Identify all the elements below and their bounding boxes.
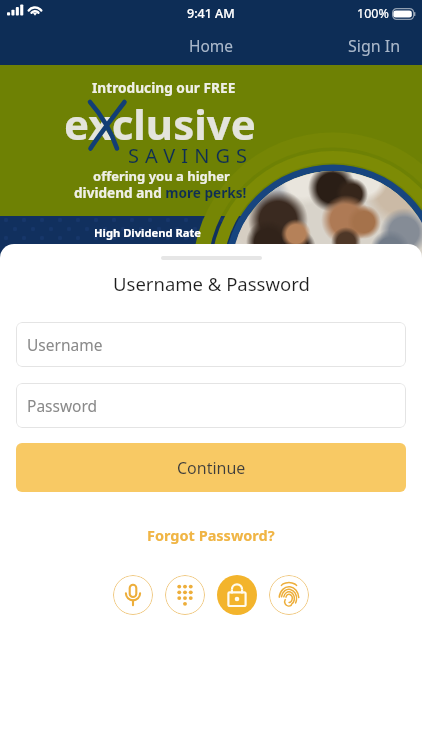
staticText: exclusive xyxy=(64,95,256,152)
button[interactable]: Forgot Password? xyxy=(139,521,283,549)
staticText: Password xyxy=(27,395,98,416)
staticText: dividend and more perks! xyxy=(74,183,247,202)
staticText: Home xyxy=(189,35,234,56)
button[interactable]: Keypad login xyxy=(165,575,205,615)
staticText: 9:41 AM xyxy=(187,5,235,22)
staticText: Introducing our FREE xyxy=(92,78,236,97)
button[interactable]: Voice login xyxy=(113,575,153,615)
button[interactable]: Home xyxy=(177,30,246,61)
staticText: 100% xyxy=(357,5,389,22)
button[interactable]: Continue xyxy=(16,443,406,492)
staticText: offering you a higher xyxy=(93,167,230,185)
button[interactable]: Sign In xyxy=(336,30,422,62)
staticText: Forgot Password? xyxy=(147,525,275,545)
button[interactable]: Username xyxy=(16,322,406,367)
button[interactable]: Password login xyxy=(217,575,257,615)
staticText: Sign In xyxy=(348,35,401,57)
staticText: Continue xyxy=(177,457,246,479)
staticText: High Dividend Rate xyxy=(94,225,201,240)
button[interactable]: Fingerprint login xyxy=(269,575,309,615)
button[interactable]: Password xyxy=(16,383,406,428)
staticText: SAVINGS xyxy=(128,142,254,169)
staticText: Username xyxy=(27,334,103,355)
staticText: Username & Password xyxy=(113,271,310,296)
